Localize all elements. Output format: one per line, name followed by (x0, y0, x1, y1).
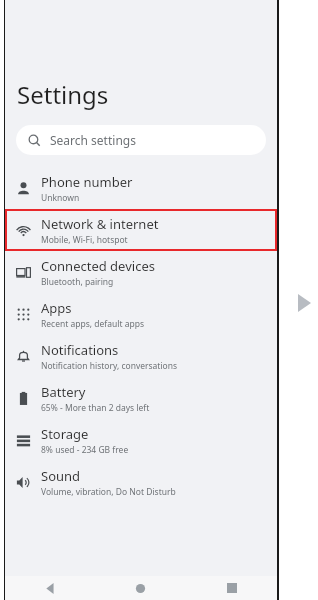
staticText: Battery (41, 383, 86, 401)
staticText: Notifications (41, 341, 119, 359)
button[interactable]: Apps (5, 293, 277, 335)
button[interactable]: Storage (5, 419, 277, 461)
staticText: 65% - More than 2 days left (41, 402, 150, 414)
staticText: Unknown (41, 192, 80, 204)
staticText: Search settings (50, 132, 136, 148)
button[interactable]: Recent apps (186, 576, 277, 600)
staticText: Volume, vibration, Do Not Disturb (41, 486, 176, 498)
button[interactable]: Network & internet (5, 209, 277, 251)
staticText: Settings (17, 78, 109, 111)
button[interactable]: Notifications (5, 335, 277, 377)
button[interactable]: Search settings (16, 125, 266, 155)
button[interactable]: Connected devices (5, 251, 277, 293)
button[interactable]: Back (5, 576, 95, 600)
staticText: Phone number (41, 173, 133, 191)
button[interactable]: Phone number (5, 167, 277, 209)
staticText: Bluetooth, pairing (41, 276, 114, 288)
button[interactable]: Sound (5, 461, 277, 503)
button[interactable]: Home (95, 576, 186, 600)
staticText: 8% used - 234 GB free (41, 444, 129, 456)
button[interactable]: Battery (5, 377, 277, 419)
staticText: Sound (41, 467, 81, 485)
staticText: Storage (41, 425, 89, 443)
staticText: Apps (41, 299, 72, 317)
staticText: Mobile, Wi-Fi, hotspot (41, 234, 128, 246)
staticText: Connected devices (41, 257, 155, 275)
staticText: Notification history, conversations (41, 360, 178, 372)
staticText: Network & internet (41, 215, 159, 233)
staticText: Recent apps, default apps (41, 318, 145, 330)
